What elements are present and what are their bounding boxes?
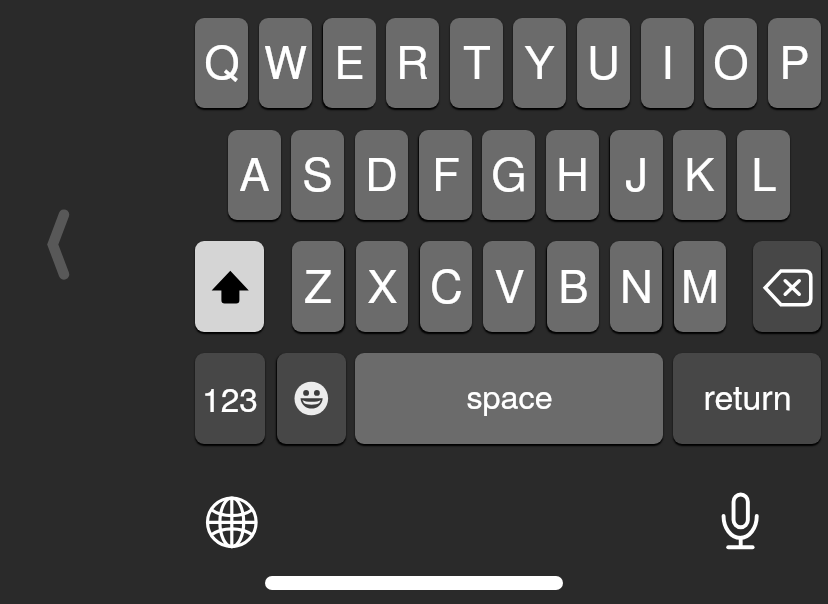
staticText: C xyxy=(430,251,463,316)
button[interactable]: 123 xyxy=(195,353,265,444)
button[interactable]: M xyxy=(674,241,726,332)
staticText: X xyxy=(367,251,398,316)
staticText: S xyxy=(302,139,333,204)
button[interactable]: U xyxy=(577,18,630,108)
button[interactable]: V xyxy=(483,241,535,332)
staticText: O xyxy=(713,27,749,92)
staticText: 123 xyxy=(202,374,258,422)
staticText: F xyxy=(432,139,460,204)
button[interactable]: L xyxy=(737,130,790,220)
button[interactable]: S xyxy=(291,130,344,220)
staticText: G xyxy=(491,139,527,204)
button[interactable]: Next keyboard xyxy=(196,486,268,560)
staticText: D xyxy=(365,139,398,204)
button[interactable]: K xyxy=(673,130,726,220)
staticText: R xyxy=(396,27,429,92)
button[interactable]: A xyxy=(228,130,281,220)
button[interactable]: N xyxy=(610,241,662,332)
button[interactable]: Delete xyxy=(753,241,821,332)
button[interactable]: I xyxy=(641,18,694,108)
button[interactable]: G xyxy=(482,130,535,220)
button[interactable]: Merge keyboard xyxy=(22,196,98,294)
staticText: P xyxy=(779,27,810,92)
staticText: H xyxy=(556,139,589,204)
staticText: L xyxy=(751,139,777,204)
button[interactable]: D xyxy=(355,130,408,220)
staticText: Y xyxy=(524,27,555,92)
button[interactable]: O xyxy=(704,18,757,108)
staticText: E xyxy=(334,27,365,92)
button[interactable]: C xyxy=(420,241,472,332)
button[interactable]: space xyxy=(355,353,663,444)
staticText: T xyxy=(463,27,491,92)
button[interactable]: W xyxy=(259,18,312,108)
button[interactable]: return xyxy=(673,353,821,444)
staticText: return xyxy=(703,371,792,420)
button[interactable]: Z xyxy=(292,241,344,332)
staticText: I xyxy=(661,27,674,92)
staticText: space xyxy=(466,372,553,418)
button[interactable]: Q xyxy=(195,18,248,108)
staticText: A xyxy=(239,139,270,204)
button[interactable]: X xyxy=(356,241,408,332)
staticText: V xyxy=(494,251,525,316)
staticText: W xyxy=(264,27,307,92)
button[interactable]: R xyxy=(386,18,439,108)
button[interactable]: Dictation xyxy=(705,486,777,560)
staticText: J xyxy=(625,139,648,204)
button[interactable]: B xyxy=(547,241,599,332)
staticText: Q xyxy=(204,27,240,92)
button[interactable]: T xyxy=(450,18,503,108)
staticText: M xyxy=(681,251,719,316)
button[interactable]: Emoji xyxy=(277,353,346,444)
button[interactable]: E xyxy=(323,18,376,108)
staticText: Z xyxy=(304,251,332,316)
button[interactable]: Y xyxy=(513,18,566,108)
button[interactable]: Shift xyxy=(195,241,264,332)
staticText: B xyxy=(558,251,589,316)
button[interactable]: H xyxy=(546,130,599,220)
button[interactable]: P xyxy=(768,18,821,108)
staticText: N xyxy=(620,251,653,316)
button[interactable]: J xyxy=(610,130,663,220)
staticText: U xyxy=(587,27,620,92)
button[interactable]: F xyxy=(419,130,472,220)
staticText: K xyxy=(684,139,715,204)
